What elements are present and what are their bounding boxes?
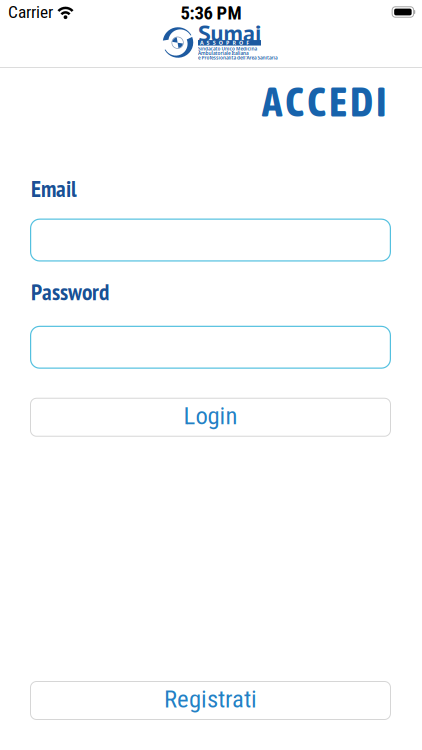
- staticText: A C C E D I: [262, 78, 387, 125]
- staticText: 5:36 PM: [180, 2, 241, 24]
- staticText: Carrier: [8, 2, 53, 22]
- staticText: Sumai: [185, 0, 312, 52]
- staticText: e Professionalità dell'Area Sanitaria: [185, 65, 344, 78]
- button[interactable]: Registrati: [30, 681, 391, 720]
- staticText: A S S O P R O F: [189, 34, 287, 49]
- staticText: Email: [31, 173, 77, 204]
- staticText: Ambulatoriale Italiana: [185, 56, 286, 69]
- staticText: Sindacato Unico Medicina: [185, 47, 303, 60]
- button[interactable]: [30, 326, 391, 369]
- staticText: Registrati: [164, 684, 257, 713]
- staticText: Password: [31, 277, 109, 307]
- staticText: Login: [183, 401, 237, 430]
- button[interactable]: [30, 219, 391, 262]
- button[interactable]: Login: [30, 398, 391, 437]
